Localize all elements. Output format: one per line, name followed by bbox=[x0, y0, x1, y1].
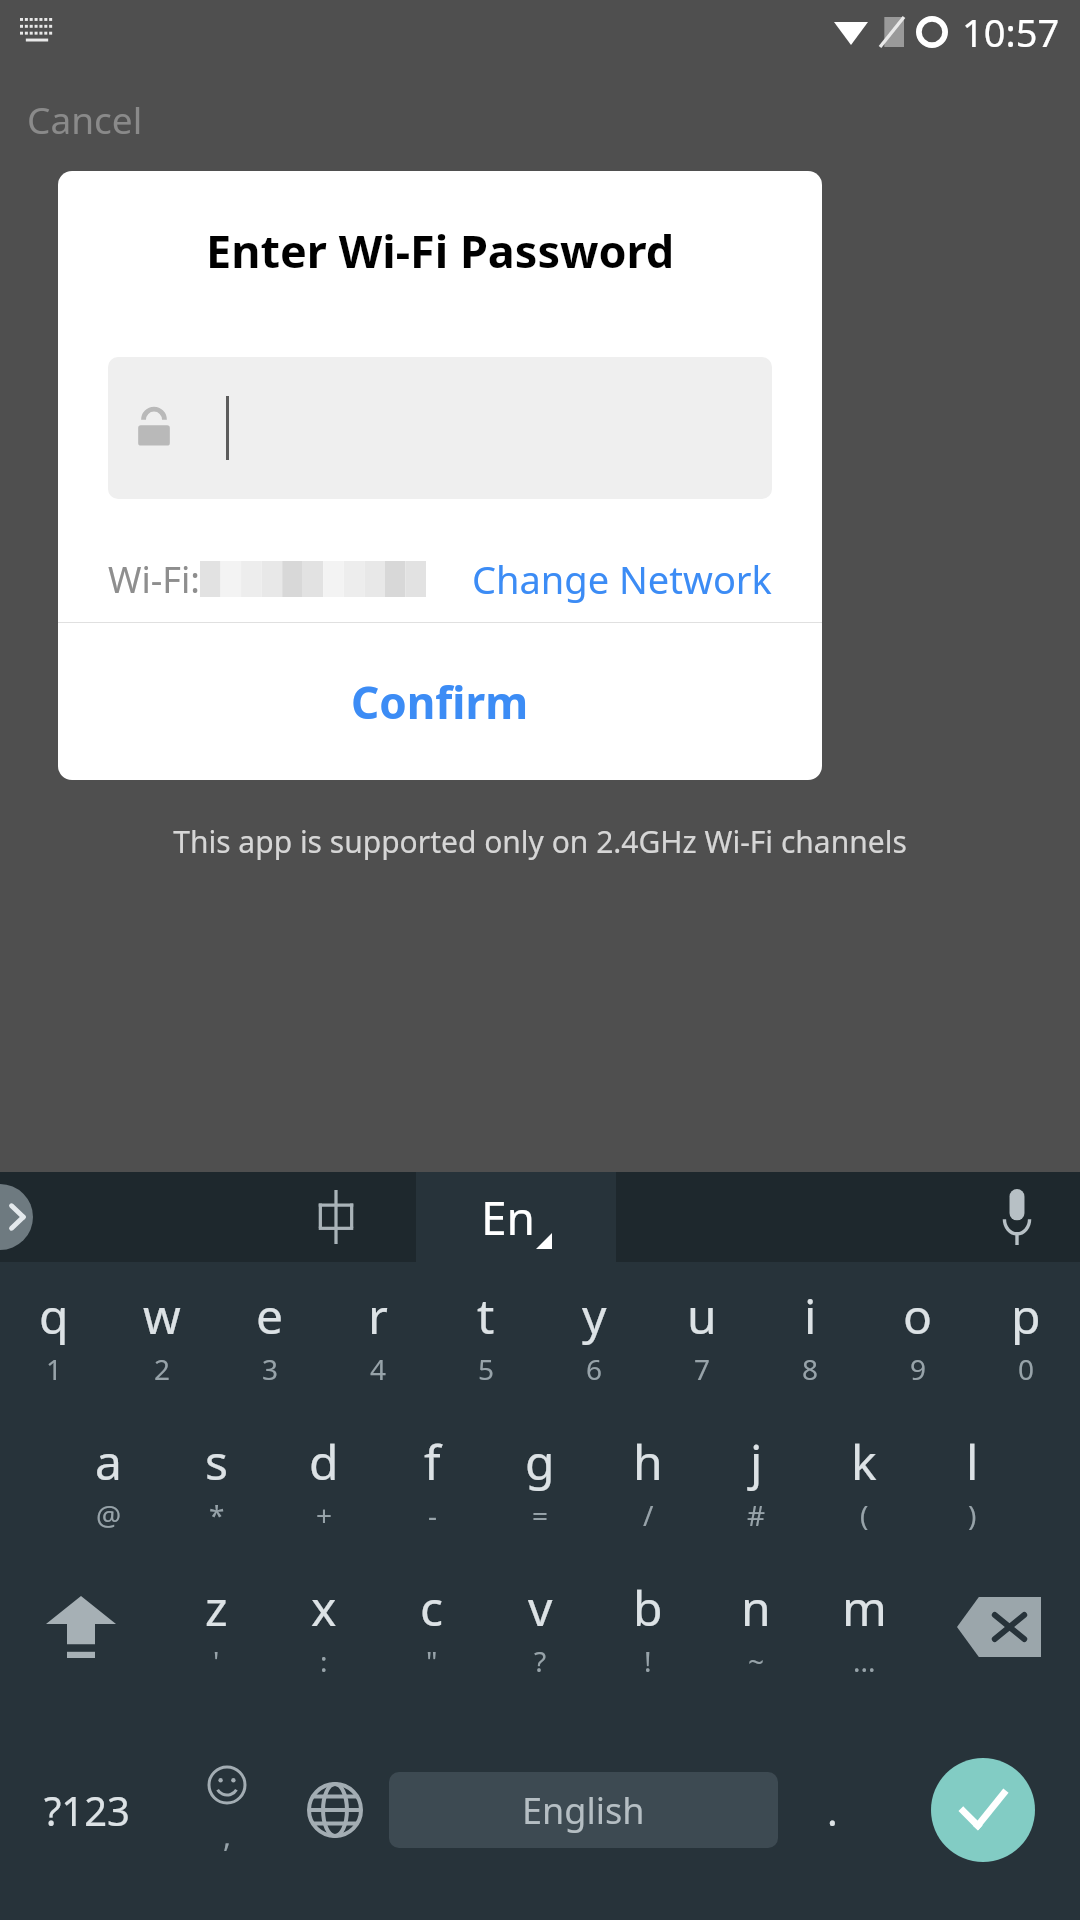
button[interactable]: z bbox=[162, 1554, 270, 1700]
staticText: e bbox=[256, 1283, 284, 1348]
staticText: @ bbox=[96, 1496, 122, 1534]
staticText: 0 bbox=[1018, 1350, 1035, 1388]
button[interactable]: d bbox=[270, 1408, 378, 1554]
button[interactable]: Change Network bbox=[472, 553, 772, 605]
staticText: # bbox=[747, 1496, 766, 1534]
staticText: i bbox=[804, 1283, 817, 1348]
staticText: Confirm bbox=[351, 672, 529, 732]
button[interactable]: m bbox=[810, 1554, 918, 1700]
button[interactable]: u bbox=[648, 1262, 756, 1408]
staticText: 8 bbox=[802, 1350, 819, 1388]
button[interactable]: q bbox=[0, 1262, 108, 1408]
button[interactable]: i bbox=[756, 1262, 864, 1408]
button[interactable]: Confirm bbox=[58, 623, 822, 780]
button[interactable]: k bbox=[810, 1408, 918, 1554]
staticText: y bbox=[582, 1283, 607, 1348]
button[interactable]: w bbox=[108, 1262, 216, 1408]
button[interactable]: b bbox=[594, 1554, 702, 1700]
staticText: 6 bbox=[586, 1350, 603, 1388]
staticText: g bbox=[525, 1429, 555, 1494]
staticText: t bbox=[477, 1283, 495, 1348]
button[interactable]: Voice input bbox=[616, 1172, 1080, 1262]
button[interactable]: o bbox=[864, 1262, 972, 1408]
staticText: w bbox=[143, 1283, 181, 1348]
staticText: o bbox=[903, 1283, 933, 1348]
staticText: 10:57 bbox=[962, 6, 1060, 58]
staticText: ?123 bbox=[44, 1783, 130, 1837]
staticText: m bbox=[842, 1575, 887, 1640]
staticText: ~ bbox=[748, 1642, 765, 1680]
button[interactable]: Change language bbox=[281, 1700, 389, 1920]
staticText: - bbox=[428, 1496, 438, 1534]
button[interactable]: g bbox=[486, 1408, 594, 1554]
button[interactable]: c bbox=[378, 1554, 486, 1700]
button[interactable]: x bbox=[270, 1554, 378, 1700]
staticText: x bbox=[311, 1575, 337, 1640]
staticText: / bbox=[643, 1496, 654, 1534]
staticText: Wi-Fi: bbox=[108, 555, 200, 604]
staticText: " bbox=[426, 1642, 438, 1680]
staticText: a bbox=[95, 1429, 122, 1494]
button[interactable]: n bbox=[702, 1554, 810, 1700]
staticText: Enter Wi-Fi Password bbox=[206, 220, 675, 281]
button[interactable]: . bbox=[778, 1700, 886, 1920]
staticText: , bbox=[223, 1815, 232, 1856]
button[interactable]: f bbox=[378, 1408, 486, 1554]
staticText: r bbox=[368, 1283, 388, 1348]
staticText: ' bbox=[213, 1642, 220, 1680]
staticText: ( bbox=[860, 1496, 869, 1534]
staticText: s bbox=[205, 1429, 228, 1494]
button[interactable]: s bbox=[162, 1408, 270, 1554]
staticText: 4 bbox=[370, 1350, 387, 1388]
staticText: u bbox=[687, 1283, 717, 1348]
staticText: ... bbox=[853, 1642, 876, 1680]
button[interactable]: Emoji bbox=[173, 1700, 281, 1920]
button[interactable]: l bbox=[918, 1408, 1026, 1554]
staticText: d bbox=[309, 1429, 339, 1494]
button[interactable]: t bbox=[432, 1262, 540, 1408]
staticText: = bbox=[532, 1496, 549, 1534]
button[interactable]: Expand toolbar bbox=[0, 1172, 256, 1262]
button[interactable]: ?123 bbox=[0, 1700, 173, 1920]
button[interactable]: Shift bbox=[0, 1554, 162, 1700]
button[interactable]: e bbox=[216, 1262, 324, 1408]
staticText: ) bbox=[968, 1496, 977, 1534]
staticText: 2 bbox=[154, 1350, 171, 1388]
button[interactable]: Chinese input bbox=[256, 1172, 416, 1262]
button[interactable]: English bbox=[389, 1772, 778, 1848]
button[interactable]: Cancel bbox=[27, 94, 143, 144]
staticText: 7 bbox=[694, 1350, 711, 1388]
button[interactable]: r bbox=[324, 1262, 432, 1408]
staticText: . bbox=[827, 1783, 838, 1837]
staticText: v bbox=[528, 1575, 553, 1640]
staticText: 1 bbox=[46, 1350, 63, 1388]
staticText: ? bbox=[534, 1642, 547, 1680]
staticText: f bbox=[424, 1429, 441, 1494]
button[interactable] bbox=[108, 357, 772, 499]
button[interactable]: v bbox=[486, 1554, 594, 1700]
staticText: 9 bbox=[910, 1350, 927, 1388]
button[interactable]: y bbox=[540, 1262, 648, 1408]
staticText: * bbox=[209, 1496, 225, 1534]
button[interactable]: Backspace bbox=[918, 1554, 1080, 1700]
button[interactable]: h bbox=[594, 1408, 702, 1554]
staticText: b bbox=[633, 1575, 663, 1640]
staticText: z bbox=[205, 1575, 228, 1640]
button[interactable]: Done bbox=[886, 1700, 1080, 1920]
button[interactable]: p bbox=[972, 1262, 1080, 1408]
staticText: q bbox=[39, 1283, 69, 1348]
button[interactable]: a bbox=[54, 1408, 162, 1554]
staticText: c bbox=[420, 1575, 444, 1640]
button[interactable]: En bbox=[416, 1172, 616, 1262]
staticText: ! bbox=[644, 1642, 652, 1680]
staticText: k bbox=[851, 1429, 877, 1494]
button[interactable]: j bbox=[702, 1408, 810, 1554]
staticText: En bbox=[481, 1186, 536, 1249]
staticText: p bbox=[1011, 1283, 1041, 1348]
staticText: 5 bbox=[478, 1350, 495, 1388]
staticText: English bbox=[522, 1786, 645, 1835]
staticText: h bbox=[633, 1429, 663, 1494]
staticText: n bbox=[741, 1575, 771, 1640]
staticText: This app is supported only on 2.4GHz Wi-… bbox=[0, 821, 1080, 862]
staticText: : bbox=[320, 1642, 328, 1680]
